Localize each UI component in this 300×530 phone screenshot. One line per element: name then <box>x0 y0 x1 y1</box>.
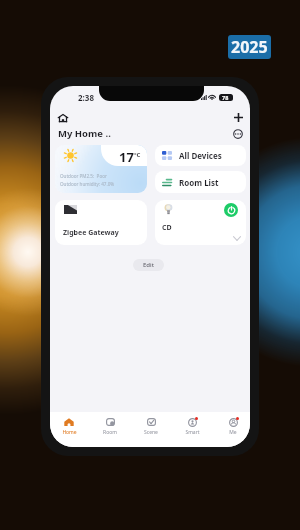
staticText: Me <box>229 429 237 436</box>
staticText: Home <box>62 429 77 436</box>
staticText: Edit <box>143 261 154 269</box>
button[interactable]: Smart <box>175 417 209 436</box>
button[interactable]: Room <box>93 417 127 436</box>
staticText: 2:38 <box>78 92 94 103</box>
button[interactable]: Zigbee Gateway <box>55 200 147 245</box>
staticText: Scene <box>144 429 158 436</box>
button[interactable]: Me <box>216 417 250 436</box>
button[interactable]: Scene <box>134 417 168 436</box>
button[interactable]: Power toggle <box>224 203 238 217</box>
staticText: All Devices <box>179 150 222 161</box>
button[interactable]: Add device <box>229 108 247 126</box>
staticText: CD <box>162 223 172 233</box>
staticText: 2025 <box>231 36 268 58</box>
staticText: °C <box>134 151 141 159</box>
button[interactable]: All Devices <box>155 145 246 166</box>
button[interactable]: Edit <box>133 259 164 271</box>
button[interactable]: Home <box>52 417 86 436</box>
button[interactable]: Room List <box>155 171 246 193</box>
staticText: 17 <box>119 148 134 166</box>
staticText: Room <box>103 429 117 436</box>
staticText: Zigbee Gateway <box>63 228 119 238</box>
staticText: My Home .. <box>58 127 111 140</box>
staticText: Smart <box>185 429 200 436</box>
button[interactable]: Home <box>54 109 72 127</box>
button[interactable]: More options <box>229 125 247 143</box>
staticText: 78 <box>222 94 229 101</box>
button[interactable]: 17 <box>55 145 147 193</box>
staticText: Outdoor PM2.5: Poor <box>60 173 107 179</box>
button[interactable]: Power toggle <box>155 200 246 245</box>
staticText: Outdoor humidity: 47.0% <box>60 181 115 187</box>
staticText: Room List <box>179 177 219 188</box>
